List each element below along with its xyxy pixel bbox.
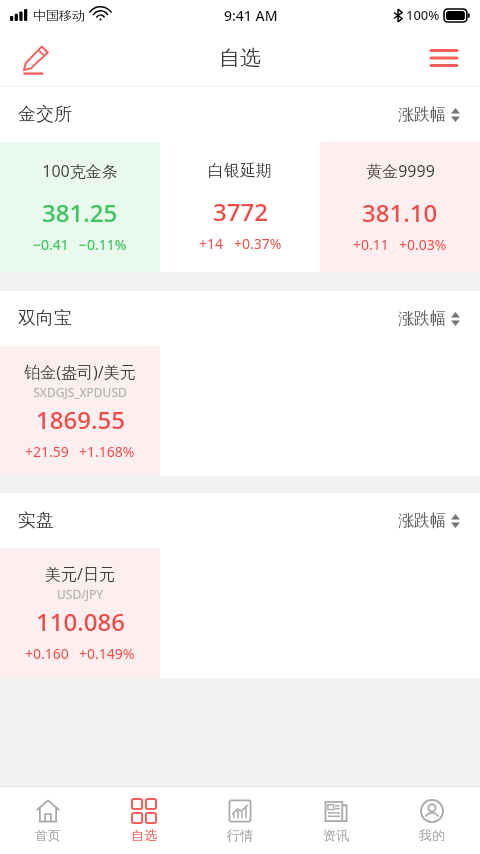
staticText: 黄金9999 <box>366 160 435 182</box>
button[interactable]: 首页 <box>0 787 96 854</box>
staticText: 美元/日元 <box>45 563 115 585</box>
staticText: 110.086 <box>36 605 125 638</box>
staticText: 资讯 <box>323 827 349 843</box>
staticText: 涨跌幅 <box>398 309 446 329</box>
staticText: +0.160 <box>25 644 69 663</box>
button[interactable]: 涨跌幅 <box>396 303 462 335</box>
button[interactable]: 资讯 <box>288 787 384 854</box>
staticText: +14 <box>199 234 224 253</box>
staticText: +0.11 <box>353 235 389 254</box>
button[interactable]: 我的 <box>384 787 480 854</box>
staticText: 金交所 <box>18 103 72 126</box>
button[interactable]: 100克金条 <box>0 142 160 272</box>
button[interactable]: 白银延期 <box>160 142 320 272</box>
staticText: 行情 <box>227 827 253 843</box>
button[interactable]: 涨跌幅 <box>396 99 462 131</box>
staticText: 100% <box>406 6 440 24</box>
staticText: −0.41 <box>33 235 69 254</box>
staticText: 首页 <box>35 827 61 843</box>
staticText: 9:41 AM <box>224 6 278 25</box>
button[interactable]: 涨跌幅 <box>396 505 462 537</box>
staticText: +0.03% <box>399 235 447 254</box>
staticText: 实盘 <box>18 509 54 532</box>
staticText: 3772 <box>213 195 268 228</box>
staticText: 涨跌幅 <box>398 511 446 531</box>
staticText: 1869.55 <box>36 403 125 436</box>
staticText: 双向宝 <box>18 307 72 330</box>
button[interactable]: 自选 <box>96 787 192 854</box>
staticText: SXDGJS_XPDUSD <box>33 384 127 400</box>
staticText: 铂金(盎司)/美元 <box>24 361 136 383</box>
button[interactable]: 铂金(盎司)/美元 <box>0 346 160 476</box>
staticText: +0.37% <box>234 234 282 253</box>
staticText: 自选 <box>131 827 157 843</box>
staticText: −0.11% <box>79 235 127 254</box>
button[interactable]: 行情 <box>192 787 288 854</box>
staticText: +1.168% <box>79 442 135 461</box>
staticText: 100克金条 <box>42 160 118 182</box>
staticText: 我的 <box>419 827 445 843</box>
staticText: 381.10 <box>362 196 438 229</box>
staticText: 涨跌幅 <box>398 105 446 125</box>
staticText: 自选 <box>219 45 261 71</box>
staticText: 白银延期 <box>208 161 272 181</box>
staticText: +0.149% <box>79 644 135 663</box>
button[interactable]: 美元/日元 <box>0 548 160 678</box>
staticText: USD/JPY <box>57 586 103 602</box>
button[interactable]: 黄金9999 <box>320 142 480 272</box>
staticText: 381.25 <box>42 196 118 229</box>
staticText: +21.59 <box>25 442 69 461</box>
staticText: 中国移动 <box>33 7 85 23</box>
button[interactable]: Edit <box>12 34 60 82</box>
button[interactable]: Menu <box>420 34 468 82</box>
